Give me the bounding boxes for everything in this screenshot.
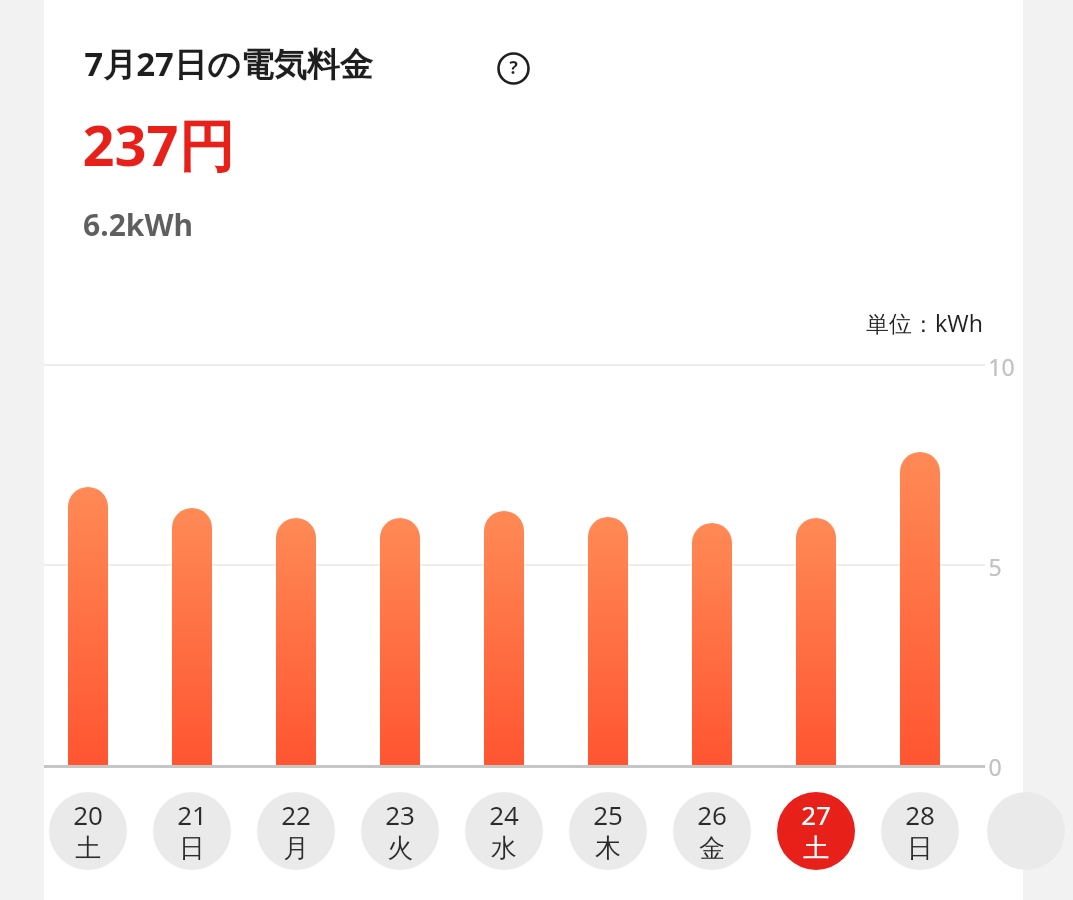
- staticText: 23: [385, 797, 415, 832]
- button[interactable]: 23: [361, 792, 439, 870]
- staticText: 25: [593, 797, 623, 832]
- staticText: ?: [509, 55, 518, 80]
- staticText: 28: [905, 797, 935, 832]
- button[interactable]: 26: [673, 792, 751, 870]
- button[interactable]: 22: [257, 792, 335, 870]
- staticText: 日: [179, 832, 205, 865]
- button[interactable]: 20: [49, 792, 127, 870]
- button[interactable]: 25: [569, 792, 647, 870]
- staticText: 月: [283, 832, 309, 865]
- staticText: 5: [988, 551, 1002, 582]
- staticText: 土: [75, 832, 101, 865]
- staticText: 237円: [82, 106, 235, 182]
- button[interactable]: 24: [465, 792, 543, 870]
- staticText: 20: [73, 797, 103, 832]
- staticText: 22: [281, 797, 311, 832]
- button[interactable]: 28: [881, 792, 959, 870]
- staticText: 6.2kWh: [83, 204, 193, 245]
- staticText: 単位：kWh: [866, 307, 983, 338]
- staticText: 金: [699, 832, 725, 865]
- staticText: 火: [387, 832, 413, 865]
- button[interactable]: 21: [153, 792, 231, 870]
- staticText: 26: [697, 797, 727, 832]
- staticText: 土: [803, 832, 829, 865]
- button[interactable]: ヘルプ: [496, 51, 531, 86]
- staticText: 日: [907, 832, 933, 865]
- staticText: 水: [491, 832, 517, 865]
- staticText: 10: [988, 351, 1015, 382]
- staticText: 木: [595, 832, 621, 865]
- staticText: 21: [177, 797, 207, 832]
- staticText: 24: [489, 797, 519, 832]
- staticText: 0: [988, 751, 1002, 782]
- button[interactable]: 27: [777, 792, 855, 870]
- button[interactable]: [987, 792, 1065, 870]
- staticText: 27: [801, 797, 831, 832]
- staticText: 7月27日の電気料金: [84, 41, 373, 86]
